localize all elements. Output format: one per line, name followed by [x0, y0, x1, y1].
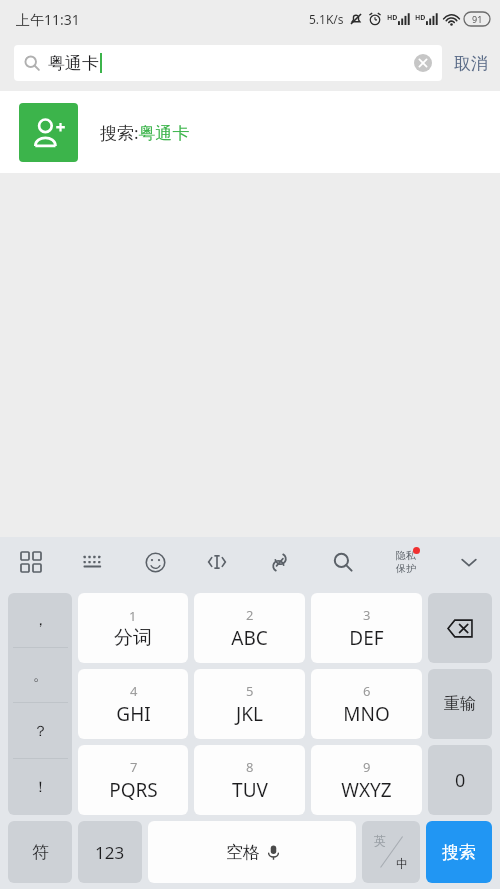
button[interactable]: Backspace — [428, 593, 492, 663]
button[interactable]: 5 — [194, 669, 305, 739]
staticText: 重输 — [444, 694, 476, 714]
staticText: 搜索 — [442, 842, 476, 863]
staticText: GHI — [116, 701, 151, 727]
staticText: 3 — [363, 606, 371, 624]
button[interactable]: Keyboard — [62, 537, 124, 587]
staticText: HD — [415, 13, 426, 23]
staticText: 9 — [363, 758, 371, 776]
button[interactable]: 粤通卡 — [14, 45, 442, 81]
button[interactable]: 2 — [194, 593, 305, 663]
button[interactable]: Emoji — [124, 537, 186, 587]
button[interactable]: 9 — [311, 745, 422, 815]
staticText: 取消 — [454, 53, 488, 74]
button[interactable]: 隐私 — [374, 537, 437, 587]
staticText: 123 — [95, 841, 125, 864]
button[interactable]: 空格 — [148, 821, 356, 883]
button[interactable]: Hide keyboard — [437, 537, 500, 587]
button[interactable]: 取消 — [454, 53, 488, 74]
button[interactable]: 0 — [428, 745, 492, 815]
staticText: 0 — [455, 768, 466, 793]
staticText: 6 — [363, 682, 371, 700]
staticText: PQRS — [109, 777, 158, 803]
button[interactable]: 3 — [311, 593, 422, 663]
button[interactable]: Panels — [0, 537, 62, 587]
staticText: JKL — [236, 701, 263, 727]
staticText: MNO — [343, 701, 390, 727]
staticText: DEF — [349, 625, 384, 651]
staticText: TUV — [232, 777, 268, 803]
staticText: 。 — [33, 666, 48, 685]
staticText: 1 — [129, 607, 137, 625]
staticText: HD — [387, 13, 398, 23]
staticText: 5.1K/s — [309, 11, 344, 27]
button[interactable]: 1 — [78, 593, 188, 663]
staticText: 隐私 — [396, 549, 416, 562]
button[interactable]: ， — [8, 593, 72, 648]
button[interactable]: Clipboard — [248, 537, 311, 587]
button[interactable]: 。 — [8, 648, 72, 703]
button[interactable]: 重输 — [428, 669, 492, 739]
button[interactable]: 8 — [194, 745, 305, 815]
staticText: 空格 — [226, 842, 260, 863]
button[interactable]: Cursor — [186, 537, 248, 587]
staticText: ， — [33, 611, 48, 630]
button[interactable]: 符 — [8, 821, 72, 883]
button[interactable]: Search — [311, 537, 374, 587]
button[interactable]: 搜索 — [426, 821, 492, 883]
staticText: 7 — [130, 758, 138, 776]
staticText: WXYZ — [341, 777, 392, 803]
staticText: ？ — [33, 722, 48, 741]
button[interactable]: 4 — [78, 669, 188, 739]
staticText: 粤通卡 — [48, 53, 99, 74]
staticText: 符 — [32, 842, 49, 863]
button[interactable]: ！ — [8, 759, 72, 815]
staticText: 上午11:31 — [16, 10, 80, 29]
staticText: 5 — [246, 682, 254, 700]
button[interactable]: 搜索:粤通卡 — [0, 91, 500, 173]
staticText: 8 — [246, 758, 254, 776]
staticText: 搜索:粤通卡 — [100, 121, 190, 144]
button[interactable]: 123 — [78, 821, 142, 883]
button[interactable]: Language toggle — [362, 821, 420, 883]
button[interactable]: 7 — [78, 745, 188, 815]
staticText: 2 — [246, 606, 254, 624]
staticText: 保护 — [396, 562, 416, 575]
staticText: 分词 — [114, 626, 152, 650]
button[interactable]: 6 — [311, 669, 422, 739]
staticText: ABC — [231, 625, 268, 651]
button[interactable]: Clear — [414, 54, 432, 72]
staticText: 91 — [472, 13, 483, 25]
button[interactable]: ？ — [8, 703, 72, 759]
staticText: ！ — [33, 778, 48, 797]
staticText: 4 — [130, 682, 138, 700]
staticText: 英 — [374, 833, 386, 848]
staticText: 中 — [396, 856, 408, 871]
